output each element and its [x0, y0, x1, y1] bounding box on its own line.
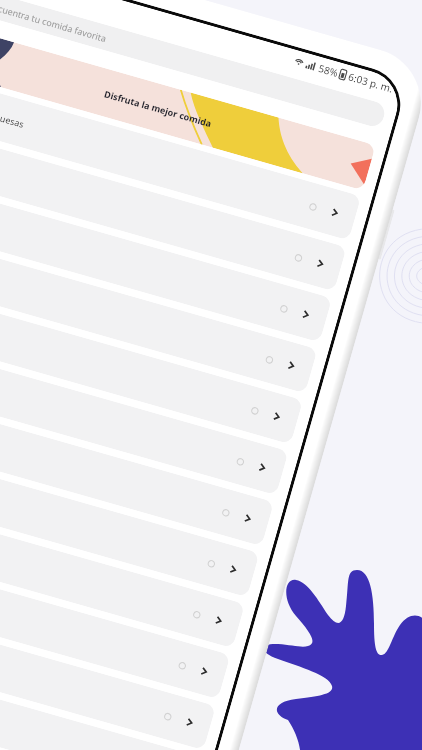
staticText: 58%: [317, 61, 340, 80]
staticText: Disfruta la mejor comida: [103, 87, 213, 129]
button[interactable]: Mariscos: [0, 437, 260, 597]
button[interactable]: Ensaladas: [0, 182, 332, 342]
button[interactable]: Pastas: [0, 335, 289, 495]
button[interactable]: Postres: [0, 488, 245, 648]
button[interactable]: Bebidas: [0, 539, 230, 699]
staticText: 6:03 p. m.: [347, 69, 395, 96]
staticText: Encuentra tu comida favorita: [0, 0, 108, 44]
button[interactable]: Pollo frito: [0, 386, 274, 546]
staticText: Hamburguesas: [0, 101, 26, 130]
button[interactable]: Helados: [0, 742, 172, 750]
button[interactable]: Sushi: [0, 284, 303, 444]
button[interactable]: Sandwiches: [0, 691, 187, 750]
button[interactable]: Desayunos: [0, 590, 216, 750]
button[interactable]: Hamburguesas: [0, 80, 361, 240]
button[interactable]: Disfruta la mejor comida: [0, 29, 376, 190]
button[interactable]: Comida china: [0, 640, 201, 750]
button[interactable]: Encuentra tu comida favorita: [0, 0, 387, 129]
button[interactable]: Pizzas: [0, 131, 347, 291]
button[interactable]: Tacos: [0, 233, 318, 393]
